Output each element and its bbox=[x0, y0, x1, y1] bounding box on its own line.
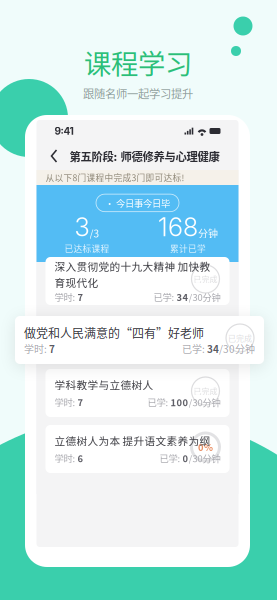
staticText: 已学: bbox=[182, 341, 207, 356]
staticText: 第五阶段: 师德修养与心理健康 bbox=[69, 148, 219, 164]
staticText: 已完成 bbox=[228, 332, 252, 344]
staticText: 学时: bbox=[24, 341, 49, 356]
button[interactable]: 0% bbox=[45, 425, 229, 473]
staticText: 学科教学与立德树人 bbox=[54, 377, 153, 392]
staticText: 学时: bbox=[54, 451, 77, 465]
staticText: 7 bbox=[77, 290, 83, 304]
staticText: 已完成 bbox=[193, 385, 217, 397]
staticText: 已学: bbox=[159, 451, 182, 465]
staticText: 0 bbox=[182, 451, 188, 465]
staticText: /30分钟 bbox=[188, 451, 220, 465]
staticText: 3 bbox=[74, 212, 89, 242]
staticText: 分钟 bbox=[198, 226, 218, 240]
staticText: 立德树人为本 提升语文素养为纲 bbox=[54, 433, 210, 448]
button[interactable]: 已完成 bbox=[15, 316, 264, 364]
staticText: 累计已学 bbox=[170, 242, 206, 255]
staticText: 34 bbox=[207, 341, 219, 356]
staticText: 已达标课程 bbox=[64, 242, 109, 255]
staticText: • 今日事今日毕 bbox=[105, 196, 170, 210]
staticText: 168 bbox=[158, 212, 198, 242]
staticText: /30分钟 bbox=[188, 290, 220, 304]
staticText: 6 bbox=[77, 451, 83, 465]
button[interactable]: 已完成 bbox=[45, 369, 229, 417]
staticText: 已学: bbox=[153, 290, 176, 304]
staticText: 34 bbox=[176, 290, 188, 304]
staticText: 已完成 bbox=[193, 273, 217, 285]
button[interactable]: 返回 bbox=[47, 146, 61, 166]
staticText: 已学: bbox=[147, 395, 170, 409]
staticText: 育现代化 bbox=[54, 275, 98, 290]
staticText: 7 bbox=[77, 395, 83, 409]
staticText: 0% bbox=[198, 440, 213, 454]
staticText: 100 bbox=[170, 395, 188, 409]
staticText: /30分钟 bbox=[188, 395, 220, 409]
staticText: 7 bbox=[49, 341, 55, 356]
button[interactable]: 已完成 bbox=[45, 257, 229, 305]
staticText: 跟随名师一起学习提升 bbox=[83, 85, 193, 101]
staticText: /30分钟 bbox=[219, 341, 255, 356]
staticText: 从以下8门课程中完成3门即可达标! bbox=[45, 171, 184, 184]
staticText: 深入贯彻党的十九大精神 加快教 bbox=[54, 258, 210, 274]
staticText: 学时: bbox=[54, 395, 77, 409]
staticText: 课程学习 bbox=[84, 42, 192, 82]
staticText: 学时: bbox=[54, 290, 77, 304]
staticText: 做党和人民满意的“四有”好老师 bbox=[24, 324, 204, 341]
staticText: /3 bbox=[89, 226, 99, 240]
staticText: 9:41 bbox=[54, 125, 73, 137]
